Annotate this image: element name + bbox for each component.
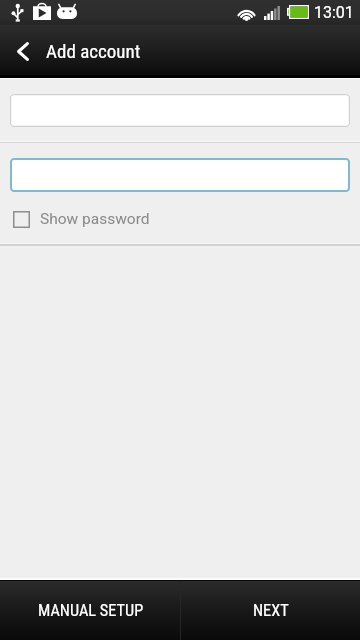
button[interactable]: MANUAL SETUP [0, 581, 180, 640]
staticText: MANUAL SETUP [38, 601, 144, 620]
button[interactable]: Show password [0, 206, 360, 232]
staticText: Show password [40, 210, 150, 228]
button[interactable] [10, 158, 350, 192]
staticText: Add account [46, 40, 141, 62]
button[interactable]: Add account [46, 25, 141, 78]
button[interactable]: Back [0, 25, 46, 78]
staticText: NEXT [253, 601, 289, 620]
button[interactable]: NEXT [181, 581, 360, 640]
button[interactable] [10, 94, 350, 127]
staticText: 13:01 [314, 3, 354, 22]
